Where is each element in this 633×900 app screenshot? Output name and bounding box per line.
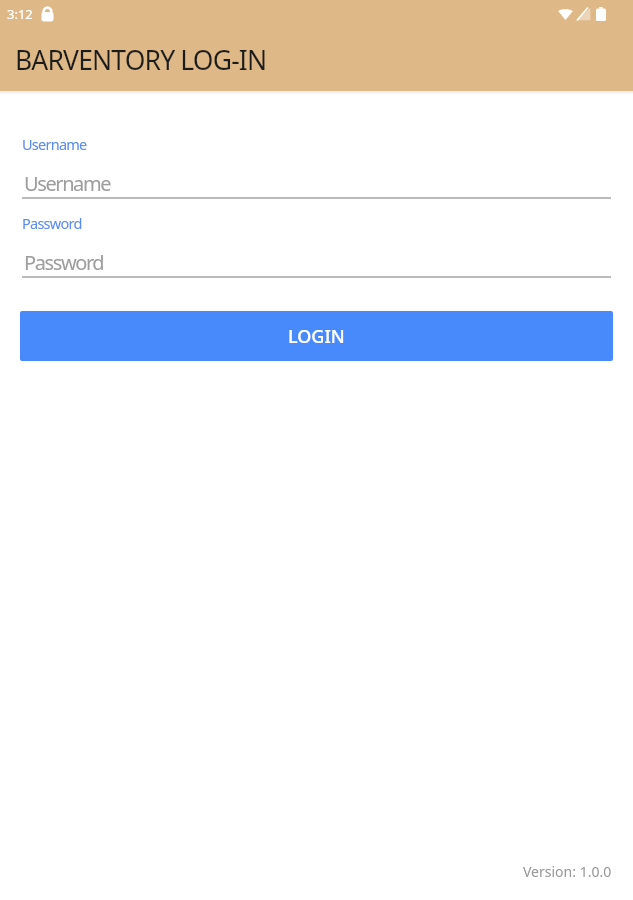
button[interactable]: Password xyxy=(22,213,611,278)
staticText: Version: 1.0.0 xyxy=(523,862,612,881)
staticText: BARVENTORY LOG-IN xyxy=(15,42,267,78)
staticText: Username xyxy=(22,134,87,154)
staticText: 3:12 xyxy=(7,5,33,23)
staticText: Password xyxy=(22,213,82,233)
other: Screen locked xyxy=(41,7,54,22)
other: Wi-Fi xyxy=(558,7,573,21)
staticText: Password xyxy=(24,249,104,276)
other: Battery xyxy=(596,7,606,21)
other: Mobile signal off xyxy=(576,7,591,21)
button[interactable]: Username xyxy=(22,134,611,199)
staticText: Username xyxy=(24,170,111,197)
staticText: LOGIN xyxy=(288,324,345,349)
button[interactable]: LOGIN xyxy=(20,311,613,361)
